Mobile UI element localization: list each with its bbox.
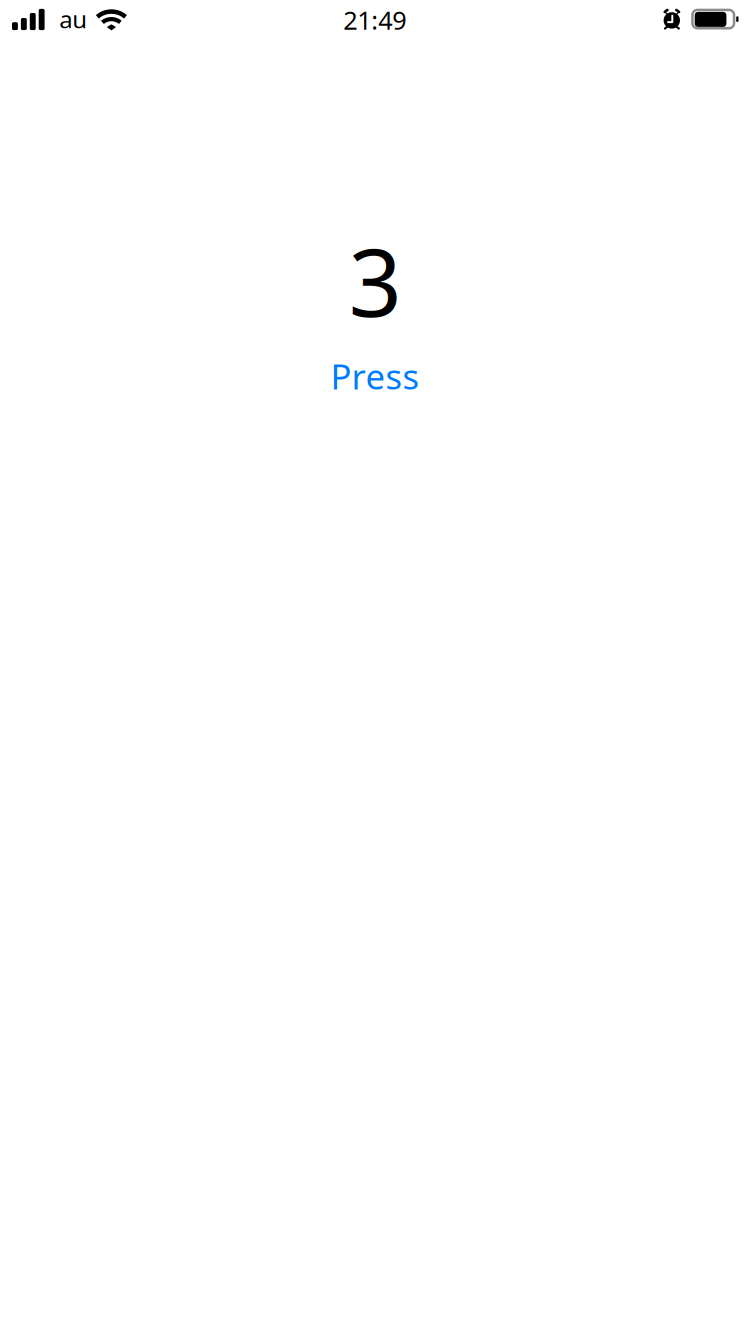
staticText: 3 (348, 218, 401, 342)
button[interactable]: Press (330, 362, 419, 389)
staticText: 21:49 (343, 3, 406, 37)
staticText: au (59, 3, 87, 35)
staticText: Press (330, 353, 419, 399)
